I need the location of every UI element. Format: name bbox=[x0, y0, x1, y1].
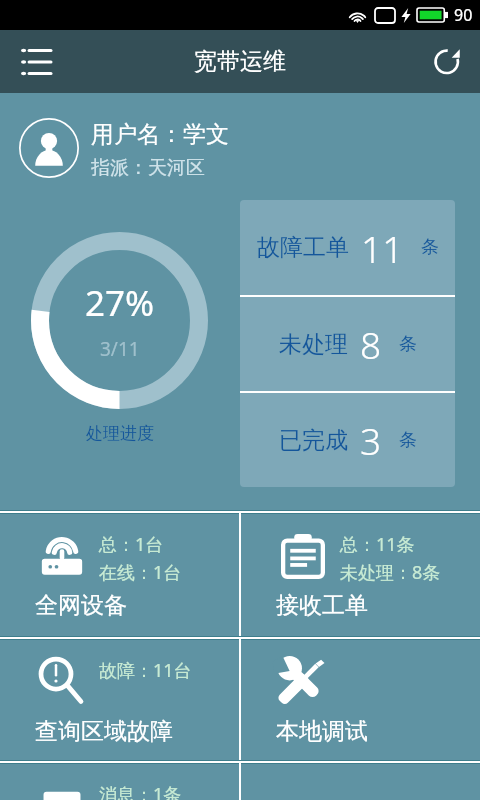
staticText: 3 bbox=[360, 415, 382, 465]
button[interactable]: 故障：11台 bbox=[0, 639, 239, 763]
staticText: 故障工单 bbox=[257, 233, 349, 262]
staticText: 用户名：学文 bbox=[91, 120, 229, 149]
button[interactable]: 消息：1条 bbox=[0, 763, 239, 800]
staticText: 本地调试 bbox=[276, 717, 368, 746]
staticText: 处理进度 bbox=[86, 423, 154, 444]
staticText: 宽带运维 bbox=[194, 47, 286, 76]
button[interactable]: 总：1台 bbox=[0, 513, 239, 637]
staticText: 已完成 bbox=[279, 426, 348, 455]
staticText: 故障：11台 bbox=[99, 658, 192, 683]
staticText: 11 bbox=[361, 223, 404, 273]
staticText: 条 bbox=[399, 429, 417, 452]
staticText: 总：1台 bbox=[99, 532, 164, 557]
staticText: 90 bbox=[454, 4, 473, 26]
staticText: 查询区域故障 bbox=[35, 717, 173, 746]
staticText: 总：11条 bbox=[340, 532, 415, 557]
staticText: 指派：天河区 bbox=[91, 156, 205, 180]
button[interactable] bbox=[241, 763, 480, 800]
staticText: 8 bbox=[360, 319, 382, 369]
button[interactable]: 本地调试 bbox=[241, 639, 480, 763]
staticText: 条 bbox=[399, 333, 417, 356]
staticText: 3/11 bbox=[100, 336, 140, 362]
button[interactable]: 未处理 bbox=[240, 297, 455, 391]
button[interactable]: 总：11条 bbox=[241, 513, 480, 637]
staticText: 条 bbox=[421, 236, 439, 259]
button[interactable]: Refresh bbox=[424, 36, 472, 84]
staticText: 消息：1条 bbox=[99, 782, 182, 800]
staticText: 在线：1台 bbox=[99, 560, 182, 585]
staticText: 接收工单 bbox=[276, 591, 368, 620]
button[interactable]: Menu bbox=[10, 36, 62, 88]
staticText: 27% bbox=[85, 279, 155, 327]
staticText: 未处理 bbox=[279, 330, 348, 359]
button[interactable]: 已完成 bbox=[240, 393, 455, 487]
staticText: 全网设备 bbox=[35, 591, 127, 620]
staticText: 未处理：8条 bbox=[340, 560, 441, 585]
button[interactable]: 故障工单 bbox=[240, 200, 455, 295]
